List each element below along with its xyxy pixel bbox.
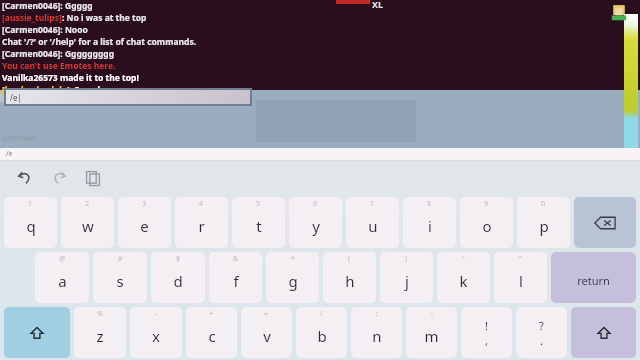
button[interactable]: 8 (403, 197, 456, 248)
staticText: 8 (427, 199, 432, 209)
staticText: x (152, 326, 160, 346)
staticText: Vanilka26573 made it to the top! (2, 72, 139, 84)
staticText: [Carmen0046]: (2, 0, 65, 12)
staticText: f (233, 271, 239, 291)
staticText: p (539, 216, 549, 236)
staticText: ! (485, 318, 488, 333)
button[interactable]: ! (461, 307, 512, 358)
button[interactable]: Redo (42, 161, 76, 195)
button[interactable]: Shift (571, 307, 636, 358)
button[interactable]: @ (35, 252, 89, 303)
staticText: ( (348, 254, 351, 264)
button[interactable]: % (74, 307, 126, 358)
staticText: % (97, 309, 103, 319)
staticText: ; (376, 309, 378, 319)
staticText: / (320, 309, 323, 319)
staticText: & (233, 254, 239, 264)
staticText: 7 (370, 199, 375, 209)
staticText: b (317, 326, 327, 346)
button[interactable]: 0 (517, 197, 570, 248)
button[interactable]: ' (437, 252, 490, 303)
staticText: y (312, 216, 320, 236)
button[interactable]: / (296, 307, 347, 358)
button[interactable]: : (406, 307, 457, 358)
button[interactable]: + (186, 307, 237, 358)
staticText: + (209, 309, 214, 319)
button[interactable]: * (266, 252, 319, 303)
staticText: z (96, 326, 104, 346)
staticText: 1 (28, 199, 33, 209)
button[interactable]: return (551, 252, 636, 303)
staticText: [Carmen0046]: Nooo (2, 24, 88, 36)
staticText: " (519, 254, 522, 264)
staticText: u (368, 216, 378, 236)
button[interactable]: ( (323, 252, 376, 303)
button[interactable]: Backspace (574, 197, 636, 248)
button[interactable]: & (209, 252, 262, 303)
staticText: - (155, 309, 158, 319)
button[interactable]: 6 (289, 197, 342, 248)
staticText: [hankaeloxdelo] (2, 84, 70, 96)
staticText: : No i was at the top (62, 12, 147, 24)
staticText: w (82, 216, 94, 236)
staticText: q (26, 216, 36, 236)
staticText: , (485, 333, 488, 348)
staticText: l (519, 271, 523, 291)
staticText: n (372, 326, 382, 346)
button[interactable]: 1 (4, 197, 57, 248)
staticText: ) (405, 254, 408, 264)
button[interactable]: 3 (118, 197, 171, 248)
staticText: [Carmen0046]: Ggggggggg (2, 48, 115, 60)
staticText: 0 (541, 199, 546, 209)
staticText: 3 (142, 199, 147, 209)
button[interactable]: 7 (346, 197, 399, 248)
staticText: k (459, 271, 468, 291)
staticText: i (428, 216, 432, 236)
button[interactable]: " (494, 252, 547, 303)
staticText: o (482, 216, 492, 236)
button[interactable]: Copy (76, 161, 110, 195)
staticText: s (116, 271, 124, 291)
button[interactable]: /e| (6, 90, 250, 104)
staticText: Ggggg (65, 0, 93, 12)
staticText: ? (539, 318, 544, 333)
staticText: You can't use Emotes here. (2, 60, 116, 72)
button[interactable]: 5 (232, 197, 285, 248)
button[interactable]: 9 (460, 197, 513, 248)
staticText: 5 (256, 199, 261, 209)
staticText: * (291, 254, 295, 264)
button[interactable]: # (93, 252, 147, 303)
staticText: /e (6, 149, 13, 159)
staticText: /e| (10, 92, 22, 103)
staticText: $ (176, 254, 181, 264)
staticText: j (405, 271, 409, 291)
button[interactable]: Undo (8, 161, 42, 195)
button[interactable]: = (241, 307, 292, 358)
staticText: 6 (313, 199, 318, 209)
button[interactable]: ? (516, 307, 567, 358)
staticText: r (198, 216, 205, 236)
staticText: Chat '/?' or '/help' for a list of chat … (2, 36, 197, 48)
staticText: a (58, 271, 67, 291)
staticText: v (263, 326, 271, 346)
staticText: return (577, 273, 610, 288)
button[interactable]: ; (351, 307, 402, 358)
button[interactable]: - (130, 307, 182, 358)
button[interactable]: ) (380, 252, 433, 303)
staticText: = (264, 309, 269, 319)
button[interactable]: 4 (175, 197, 228, 248)
button[interactable]: 2 (61, 197, 114, 248)
staticText: : (431, 309, 433, 319)
staticText: g (288, 271, 298, 291)
staticText: m (424, 326, 439, 346)
staticText: h (345, 271, 355, 291)
button[interactable]: $ (151, 252, 205, 303)
staticText: # (118, 254, 123, 264)
staticText: XL (372, 0, 384, 10)
button[interactable]: Shift (4, 307, 70, 358)
staticText: 9 (484, 199, 489, 209)
staticText: ' (463, 254, 465, 264)
staticText: 2 (85, 199, 90, 209)
staticText: unknown (2, 132, 38, 143)
